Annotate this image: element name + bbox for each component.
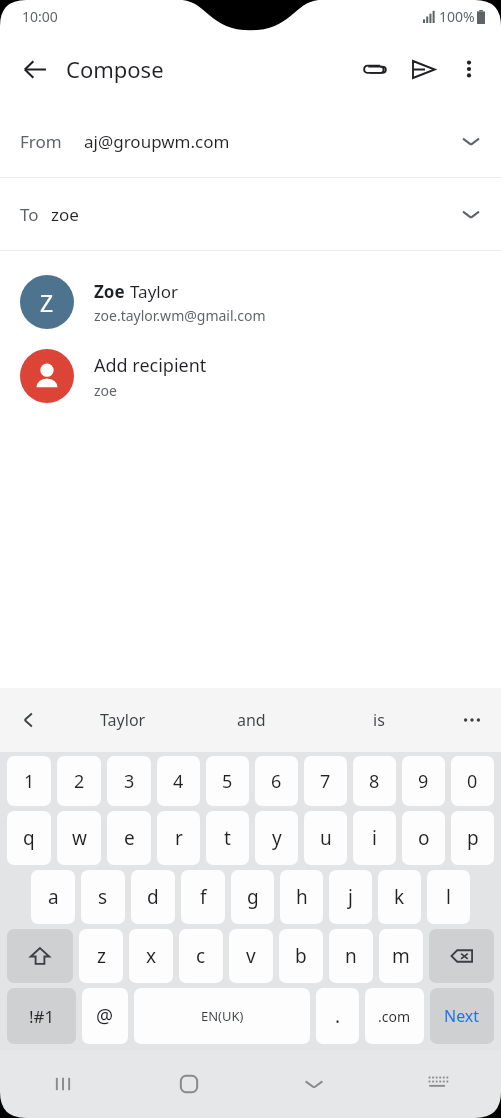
staticText: p (467, 825, 479, 851)
button[interactable]: 1 (7, 756, 51, 806)
button[interactable]: 7 (304, 756, 347, 806)
button[interactable]: Previous suggestions (0, 688, 58, 752)
button[interactable]: m (379, 929, 423, 983)
button[interactable]: d (131, 870, 175, 924)
staticText: 5 (222, 769, 233, 794)
button[interactable]: o (402, 811, 445, 865)
staticText: z (97, 943, 106, 969)
staticText: @ (96, 1003, 114, 1029)
staticText: d (147, 884, 159, 910)
staticText: 0 (467, 769, 478, 794)
button[interactable]: i (353, 811, 396, 865)
staticText: x (146, 943, 157, 969)
button[interactable]: Attach file (351, 45, 399, 93)
button[interactable]: Back (10, 45, 58, 93)
button[interactable]: EN(UK) (134, 988, 310, 1044)
button[interactable]: Backspace (429, 929, 494, 983)
staticText: n (345, 943, 357, 969)
staticText: k (394, 884, 405, 910)
button[interactable]: 8 (353, 756, 396, 806)
button[interactable]: r (157, 811, 200, 865)
button[interactable]: 6 (255, 756, 298, 806)
staticText: f (200, 884, 207, 910)
button[interactable]: f (181, 870, 225, 924)
staticText: zoe (94, 381, 117, 400)
button[interactable]: Shift (7, 929, 73, 983)
staticText: c (196, 943, 206, 969)
button[interactable]: w (57, 811, 101, 865)
button[interactable]: 9 (402, 756, 445, 806)
staticText: 3 (124, 769, 135, 794)
button[interactable]: @ (82, 988, 128, 1044)
button[interactable]: and (187, 688, 315, 752)
button[interactable]: Z (0, 265, 501, 339)
button[interactable]: More options (447, 45, 491, 93)
staticText: and (237, 709, 266, 731)
staticText: q (23, 825, 35, 851)
button[interactable]: e (107, 811, 151, 865)
button[interactable]: Hide keyboard (251, 1050, 376, 1118)
button[interactable]: is (315, 688, 443, 752)
button[interactable]: 2 (57, 756, 101, 806)
staticText: h (296, 884, 308, 910)
staticText: Z (40, 287, 54, 318)
button[interactable]: Send (399, 45, 447, 93)
button[interactable]: q (7, 811, 51, 865)
button[interactable]: To (0, 178, 501, 250)
button[interactable]: y (255, 811, 298, 865)
button[interactable]: z (79, 929, 123, 983)
button[interactable]: Keyboard layout (376, 1050, 501, 1118)
staticText: Zoe (94, 280, 130, 303)
staticText: o (418, 825, 430, 851)
button[interactable]: x (129, 929, 173, 983)
staticText: aj@groupwm.com (84, 130, 230, 153)
button[interactable]: s (81, 870, 125, 924)
button[interactable]: t (206, 811, 249, 865)
button[interactable]: Add recipient (0, 339, 501, 413)
staticText: 9 (418, 769, 429, 794)
button[interactable]: 5 (206, 756, 249, 806)
staticText: i (372, 825, 377, 851)
staticText: 1 (24, 769, 35, 794)
button[interactable]: k (378, 870, 421, 924)
staticText: u (320, 825, 332, 851)
button[interactable]: . (316, 988, 359, 1044)
staticText: zoe (51, 203, 79, 226)
staticText: 6 (271, 769, 282, 794)
button[interactable]: n (329, 929, 373, 983)
button[interactable]: g (231, 870, 274, 924)
button[interactable]: Home (126, 1050, 251, 1118)
staticText: Next (444, 1005, 480, 1027)
staticText: m (392, 943, 410, 969)
staticText: Taylor (100, 709, 146, 731)
button[interactable]: 0 (451, 756, 494, 806)
button[interactable]: Recents (0, 1050, 126, 1118)
staticText: 100% (439, 7, 475, 26)
button[interactable]: u (304, 811, 347, 865)
staticText: From (20, 130, 62, 153)
button[interactable]: l (427, 870, 470, 924)
button[interactable]: Taylor (58, 688, 187, 752)
button[interactable]: a (31, 870, 75, 924)
staticText: Taylor (130, 280, 178, 303)
button[interactable]: 3 (107, 756, 151, 806)
button[interactable]: j (329, 870, 372, 924)
button[interactable]: b (279, 929, 323, 983)
button[interactable]: h (280, 870, 323, 924)
staticText: 8 (369, 769, 380, 794)
button[interactable]: Next (430, 988, 494, 1044)
button[interactable]: More suggestions (443, 688, 501, 752)
staticText: w (72, 825, 87, 851)
button[interactable]: v (229, 929, 273, 983)
button[interactable]: c (179, 929, 223, 983)
staticText: a (48, 884, 59, 910)
button[interactable]: 4 (157, 756, 200, 806)
button[interactable]: !#1 (7, 988, 76, 1044)
staticText: y (272, 825, 282, 851)
staticText: 10:00 (22, 7, 58, 26)
button[interactable]: .com (365, 988, 424, 1044)
staticText: Compose (66, 54, 164, 84)
button[interactable]: From (0, 105, 501, 177)
button[interactable]: p (451, 811, 494, 865)
staticText: b (295, 943, 307, 969)
